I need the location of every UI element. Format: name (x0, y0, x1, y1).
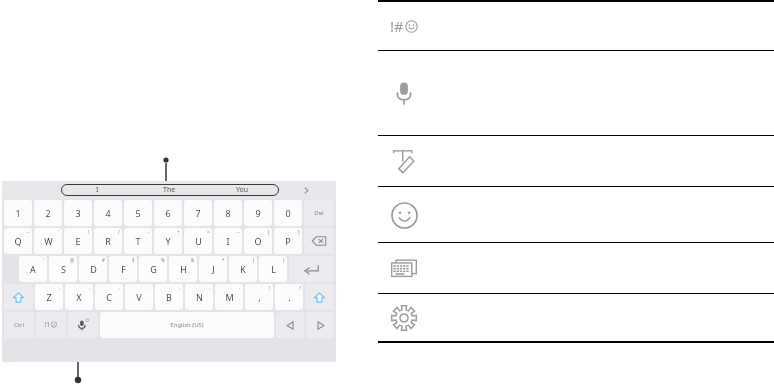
button[interactable]: B (155, 284, 183, 310)
button[interactable]: Move cursor right (306, 312, 334, 338)
staticText: D (90, 263, 97, 275)
staticText: ? (299, 285, 301, 291)
button[interactable]: 0 (274, 200, 302, 226)
button[interactable]: T (124, 228, 152, 254)
button[interactable]: V (125, 284, 153, 310)
button[interactable]: W (34, 228, 62, 254)
button[interactable]: Ctrl (4, 312, 34, 338)
staticText: G (150, 263, 157, 275)
button[interactable]: Keyboard layouts (378, 243, 774, 293)
button[interactable]: H (169, 256, 197, 282)
button[interactable]: Del (304, 200, 334, 226)
button[interactable]: A (19, 256, 47, 282)
staticText: !# (390, 16, 404, 36)
staticText: A (30, 263, 36, 275)
button[interactable]: 5 (124, 200, 152, 226)
button[interactable]: Q (4, 228, 32, 254)
staticText: The (163, 185, 176, 195)
staticText: % (161, 257, 165, 263)
button[interactable]: !1☺ (36, 312, 66, 338)
staticText: W (44, 235, 53, 247)
button[interactable]: 3 (64, 200, 92, 226)
staticText: X (76, 291, 82, 303)
button[interactable]: Enter (289, 256, 334, 282)
button[interactable]: Y (154, 228, 182, 254)
button[interactable]: 6 (154, 200, 182, 226)
staticText: · (89, 285, 91, 291)
staticText: + (177, 229, 180, 235)
button[interactable]: N (185, 284, 213, 310)
staticText: 8 (225, 207, 231, 219)
button[interactable]: The (133, 184, 206, 196)
staticText: · (239, 285, 241, 291)
staticText: You (236, 185, 249, 195)
staticText: . (288, 291, 291, 303)
button[interactable]: R (94, 228, 122, 254)
button[interactable]: I (61, 184, 133, 196)
staticText: H (180, 263, 187, 275)
button[interactable]: You (206, 184, 279, 196)
button[interactable]: Z (35, 284, 63, 310)
button[interactable]: S (49, 256, 77, 282)
button[interactable]: D (79, 256, 107, 282)
button[interactable]: . (275, 284, 303, 310)
staticText: B (166, 291, 172, 303)
button[interactable]: M (215, 284, 243, 310)
staticText: U (195, 235, 202, 247)
button[interactable]: 2 (34, 200, 62, 226)
button[interactable]: Symbols and emoji (378, 2, 774, 50)
staticText: !1☺ (44, 320, 58, 330)
staticText: 4 (105, 207, 111, 219)
button[interactable]: Handwriting (378, 136, 774, 186)
button[interactable]: P (274, 228, 302, 254)
button[interactable]: G (139, 256, 167, 282)
button[interactable]: K (229, 256, 257, 282)
staticText: ! (269, 285, 271, 291)
button[interactable]: 7 (184, 200, 212, 226)
button[interactable]: J (199, 256, 227, 282)
button[interactable]: Move cursor left (276, 312, 304, 338)
staticText: T (135, 235, 141, 247)
button[interactable]: Shift (305, 284, 334, 310)
button[interactable]: Settings (378, 294, 774, 341)
button[interactable]: X (65, 284, 93, 310)
other: Symbols and emoji (387, 9, 421, 43)
button[interactable]: English (US) (100, 312, 274, 338)
staticText: $ (132, 257, 135, 263)
button[interactable]: C (95, 284, 123, 310)
staticText: K (240, 263, 246, 275)
button[interactable]: O (244, 228, 272, 254)
button[interactable]: Emoji (378, 187, 774, 242)
button[interactable]: I (214, 228, 242, 254)
staticText: S (61, 263, 66, 275)
button[interactable]: Voice input (378, 51, 774, 135)
staticText: I (226, 235, 230, 247)
staticText: Q (14, 235, 22, 247)
staticText: 5 (135, 207, 141, 219)
button[interactable]: E (64, 228, 92, 254)
staticText: · (119, 285, 121, 291)
staticText: ) (283, 257, 285, 263)
staticText: ' (43, 257, 45, 263)
button[interactable]: U (184, 228, 212, 254)
other: Keyboard layouts (387, 251, 421, 285)
button[interactable]: 1 (4, 200, 32, 226)
button[interactable]: L (259, 256, 287, 282)
button[interactable]: F (109, 256, 137, 282)
staticText: ~ (27, 229, 30, 235)
staticText: · (149, 285, 151, 291)
button[interactable]: Backspace (304, 228, 334, 254)
button[interactable]: 8 (214, 200, 242, 226)
button[interactable]: 9 (244, 200, 272, 226)
button[interactable]: More suggestions (294, 181, 318, 199)
staticText: ` (58, 229, 60, 235)
staticText: · (59, 285, 61, 291)
staticText: Del (314, 209, 324, 217)
button[interactable]: 4 (94, 200, 122, 226)
button[interactable]: , (245, 284, 273, 310)
button[interactable]: Shift (4, 284, 33, 310)
button[interactable]: Voice input (68, 312, 98, 338)
staticText: I (96, 185, 99, 195)
staticText: 2 (45, 207, 51, 219)
staticText: Y (165, 235, 171, 247)
